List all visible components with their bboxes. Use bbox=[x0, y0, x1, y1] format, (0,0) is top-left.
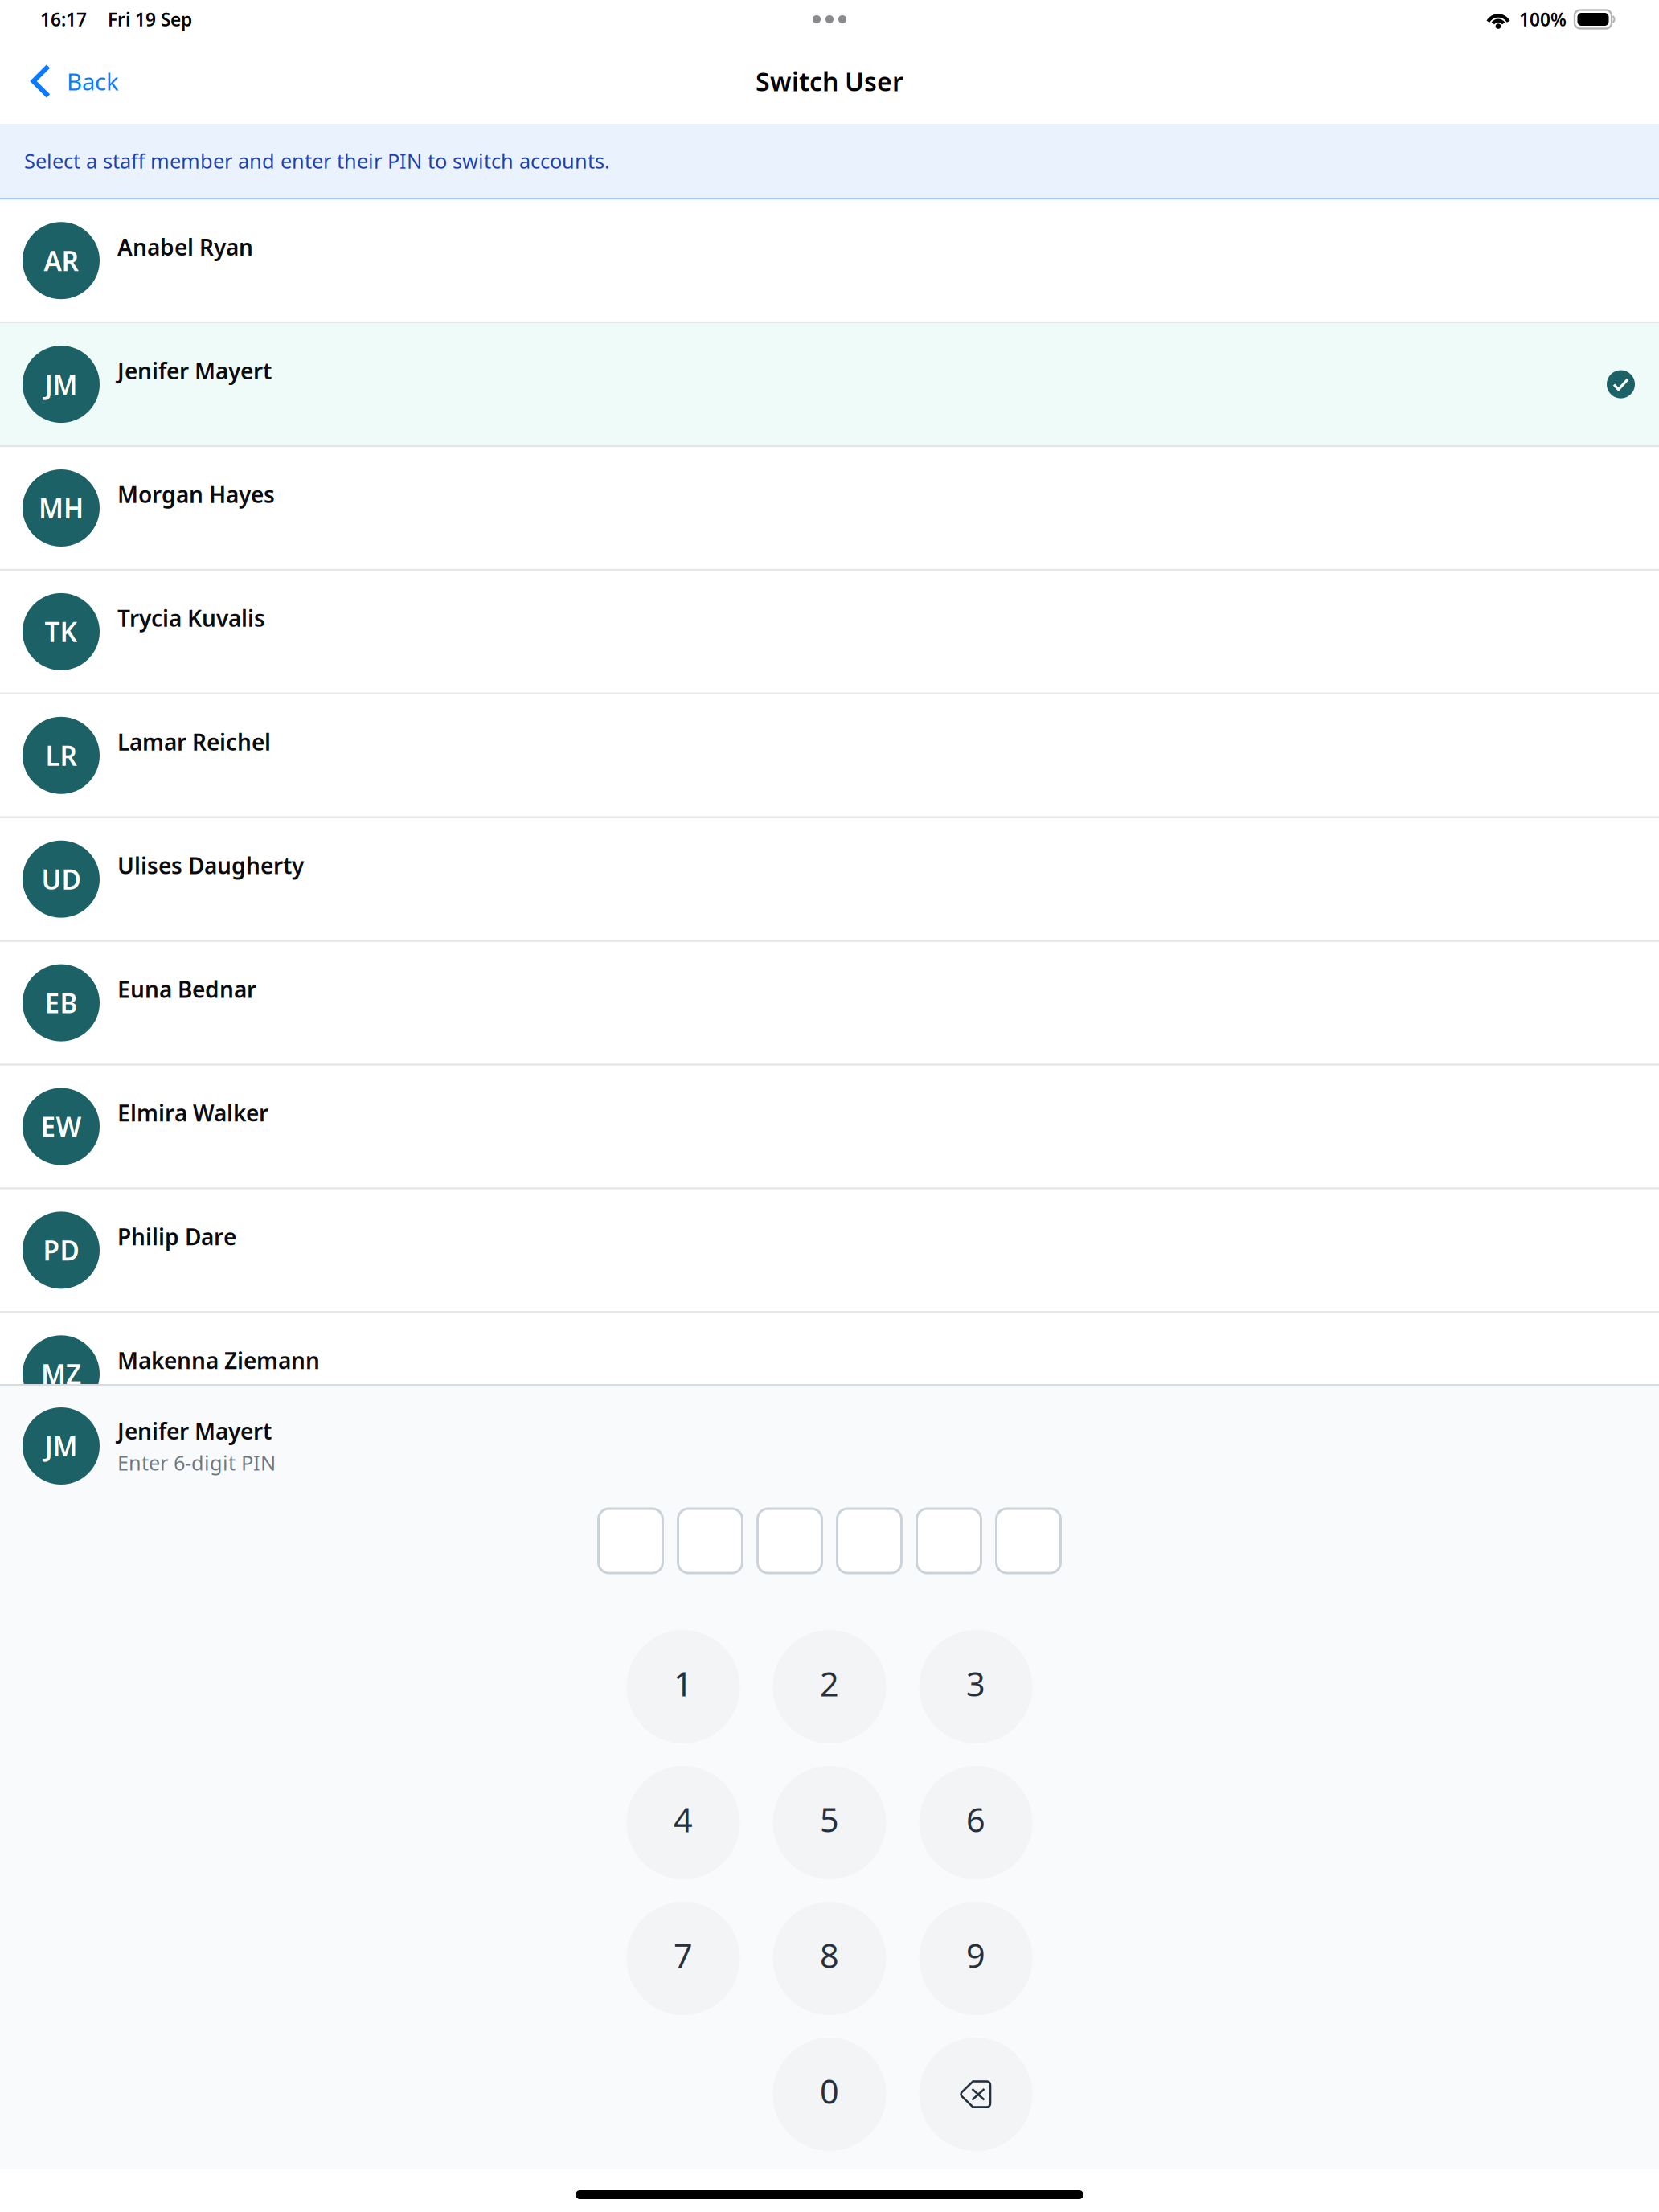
button[interactable]: EB bbox=[0, 942, 1659, 1064]
button[interactable]: MH bbox=[0, 447, 1659, 569]
staticText: Fri 19 Sep bbox=[108, 7, 192, 31]
staticText: AR bbox=[44, 243, 78, 278]
staticText: LR bbox=[45, 738, 77, 773]
button[interactable]: 4 bbox=[627, 1766, 740, 1879]
button[interactable]: AR bbox=[0, 200, 1659, 321]
staticText: Switch User bbox=[756, 64, 903, 98]
staticText: Lamar Reichel bbox=[117, 727, 271, 757]
staticText: Anabel Ryan bbox=[117, 232, 253, 262]
staticText: 5 bbox=[820, 1797, 839, 1841]
staticText: Makenna Ziemann bbox=[117, 1345, 320, 1375]
button[interactable]: UD bbox=[0, 818, 1659, 940]
button[interactable]: 1 bbox=[627, 1630, 740, 1743]
button[interactable]: 7 bbox=[627, 1902, 740, 2015]
button[interactable]: EW bbox=[0, 1066, 1659, 1187]
staticText: JM bbox=[45, 1428, 78, 1464]
staticText: Ulises Daugherty bbox=[117, 850, 304, 880]
staticText: Jenifer Mayert bbox=[117, 356, 272, 386]
staticText: 9 bbox=[966, 1933, 985, 1977]
button[interactable]: PD bbox=[0, 1189, 1659, 1311]
staticText: PD bbox=[43, 1232, 79, 1268]
staticText: Select a staff member and enter their PI… bbox=[24, 147, 610, 174]
staticText: Back bbox=[67, 66, 119, 97]
staticText: 16:17 bbox=[40, 7, 87, 31]
button[interactable]: 2 bbox=[773, 1630, 886, 1743]
staticText: Morgan Hayes bbox=[117, 479, 275, 509]
staticText: 7 bbox=[674, 1933, 693, 1977]
staticText: EB bbox=[45, 985, 78, 1021]
staticText: 1 bbox=[674, 1661, 693, 1706]
staticText: 3 bbox=[966, 1661, 985, 1706]
staticText: 6 bbox=[966, 1797, 985, 1841]
staticText: 4 bbox=[674, 1797, 693, 1841]
button[interactable]: Back bbox=[0, 39, 140, 124]
button[interactable]: 6 bbox=[919, 1766, 1032, 1879]
button[interactable]: MZ bbox=[0, 1313, 1659, 1435]
button[interactable]: TK bbox=[0, 571, 1659, 693]
staticText: Enter 6-digit PIN bbox=[117, 1449, 276, 1476]
button[interactable]: 8 bbox=[773, 1902, 886, 2015]
staticText: 0 bbox=[820, 2069, 839, 2113]
staticText: Euna Bednar bbox=[117, 974, 256, 1004]
staticText: 2 bbox=[820, 1661, 839, 1706]
staticText: 8 bbox=[820, 1933, 839, 1977]
button[interactable]: 3 bbox=[919, 1630, 1032, 1743]
staticText: JM bbox=[45, 367, 78, 402]
staticText: Elmira Walker bbox=[117, 1098, 268, 1128]
button[interactable]: Delete bbox=[919, 2038, 1032, 2151]
staticText: EW bbox=[41, 1109, 82, 1144]
staticText: TK bbox=[45, 614, 78, 650]
staticText: Jenifer Mayert bbox=[117, 1416, 272, 1446]
button[interactable]: 9 bbox=[919, 1902, 1032, 2015]
button[interactable]: 0 bbox=[773, 2038, 886, 2151]
staticText: 100% bbox=[1519, 7, 1567, 31]
button[interactable]: JM bbox=[0, 323, 1659, 445]
staticText: Philip Dare bbox=[117, 1222, 236, 1251]
staticText: Trycia Kuvalis bbox=[117, 603, 265, 633]
staticText: UD bbox=[41, 861, 81, 897]
button[interactable]: LR bbox=[0, 695, 1659, 816]
staticText: MH bbox=[39, 490, 84, 526]
staticText: MZ bbox=[41, 1356, 81, 1392]
button[interactable]: 5 bbox=[773, 1766, 886, 1879]
